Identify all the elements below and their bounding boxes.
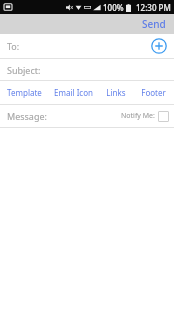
button[interactable]: Send — [134, 14, 174, 34]
staticText: Footer — [141, 87, 166, 98]
staticText: Message: — [7, 110, 47, 122]
button[interactable]: Notify Me: — [121, 105, 174, 127]
other: Notify me checkbox — [158, 111, 169, 122]
staticText: Send — [142, 17, 166, 31]
button[interactable]: To: — [0, 34, 20, 58]
staticText: Links — [106, 87, 126, 98]
staticText: Template — [7, 87, 42, 98]
staticText: Email Icon — [54, 87, 93, 98]
button[interactable]: Links — [98, 81, 133, 104]
staticText: Subject: — [7, 64, 41, 76]
button[interactable]: Template — [0, 81, 48, 104]
staticText: 100% — [103, 2, 124, 13]
button[interactable]: Add recipient — [150, 37, 168, 55]
button[interactable]: Subject: — [0, 59, 174, 80]
staticText: Notify Me: — [121, 111, 155, 121]
button[interactable]: Footer — [133, 81, 174, 104]
staticText: 12:30 PM — [136, 2, 171, 13]
staticText: To: — [7, 40, 20, 52]
button[interactable]: Email Icon — [48, 81, 98, 104]
